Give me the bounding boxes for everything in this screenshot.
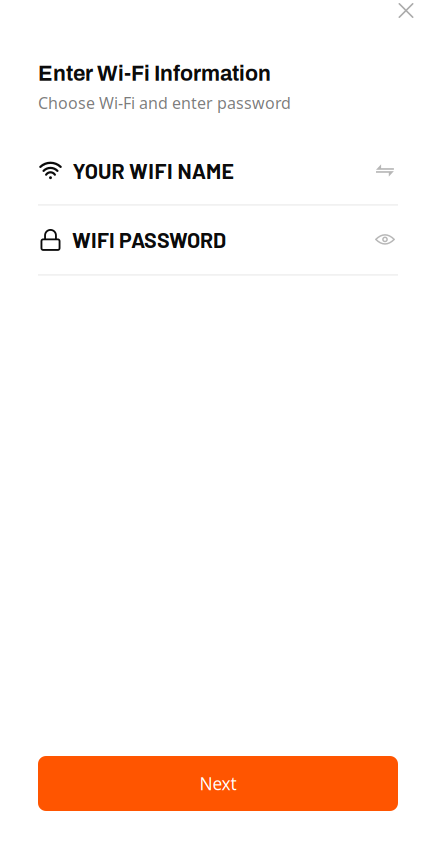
button[interactable]: Next xyxy=(38,756,398,811)
button[interactable]: Close xyxy=(382,0,434,32)
button[interactable]: YOUR WIFI NAME xyxy=(38,139,398,204)
button[interactable]: WIFI PASSWORD xyxy=(38,205,398,274)
staticText: Choose Wi-Fi and enter password xyxy=(38,92,291,113)
staticText: Enter Wi-Fi Information xyxy=(38,62,271,85)
staticText: WIFI PASSWORD xyxy=(72,227,226,252)
staticText: YOUR WIFI NAME xyxy=(72,158,233,183)
staticText: Next xyxy=(199,772,236,795)
